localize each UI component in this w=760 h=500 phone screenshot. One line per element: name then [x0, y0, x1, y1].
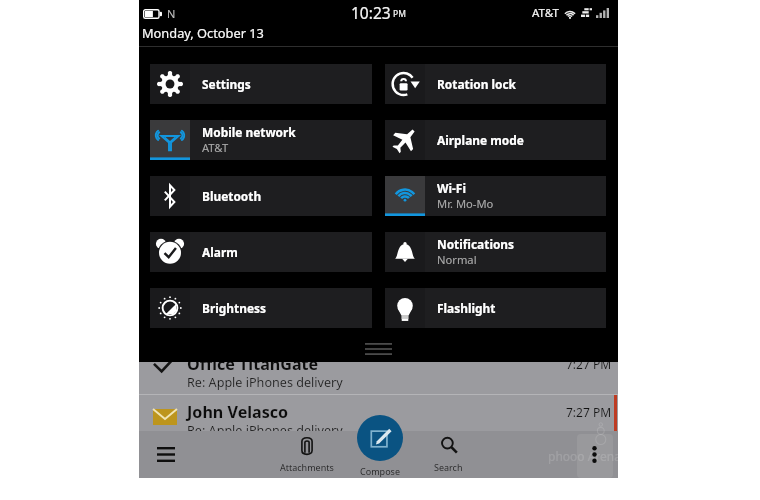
button[interactable]: Notifications [385, 232, 606, 272]
button[interactable]: More options [580, 435, 608, 473]
staticText: Re: Apple iPhones delivery [187, 374, 343, 391]
staticText: 7:27 PM [566, 356, 612, 372]
button[interactable]: John Velasco [139, 399, 618, 443]
button[interactable]: Office TitanGate [139, 351, 618, 395]
staticText: Normal [437, 252, 477, 267]
button[interactable]: Search [416, 434, 480, 476]
staticText: Wi-Fi [437, 180, 466, 196]
staticText: 10:23 [351, 2, 391, 23]
button[interactable]: Bluetooth [150, 176, 372, 216]
staticText: N [167, 6, 176, 21]
button[interactable]: Rotation lock [385, 64, 606, 104]
staticText: Rotation lock [437, 76, 516, 92]
staticText: Monday, October 13 [142, 24, 264, 41]
staticText: Attachments [280, 461, 334, 473]
staticText: Office TitanGate [187, 353, 319, 375]
staticText: phooo Arena [548, 448, 621, 464]
staticText: Search [434, 461, 463, 473]
staticText: Notifications [437, 236, 515, 252]
button[interactable]: Attachments [275, 434, 339, 476]
staticText: Bluetooth [202, 188, 262, 204]
staticText: Mr. Mo-Mo [437, 196, 494, 211]
staticText: Alarm [202, 244, 238, 260]
button[interactable]: Flashlight [385, 288, 606, 328]
button[interactable]: Compose [357, 415, 403, 461]
staticText: John Velasco [187, 401, 289, 423]
button[interactable]: Wi-Fi [385, 176, 606, 216]
staticText: AT&T [532, 5, 559, 21]
staticText: Re: Apple iPhones delivery [187, 422, 343, 439]
button[interactable]: Brightness [150, 288, 372, 328]
staticText: AT&T [202, 140, 229, 155]
button[interactable]: Settings [150, 64, 372, 104]
staticText: Airplane mode [437, 132, 524, 148]
button[interactable]: Airplane mode [385, 120, 606, 160]
staticText: Brightness [202, 300, 266, 316]
button[interactable]: Alarm [150, 232, 372, 272]
button[interactable]: Mobile network [150, 120, 372, 160]
staticText: Flashlight [437, 300, 496, 316]
button[interactable]: Menu [144, 432, 188, 476]
button[interactable]: Collapse panel [365, 343, 392, 355]
staticText: Settings [202, 76, 251, 92]
staticText: Mobile network [202, 124, 296, 140]
staticText: 7:27 PM [566, 404, 612, 420]
staticText: Compose [350, 465, 410, 477]
staticText: PM [393, 8, 406, 20]
